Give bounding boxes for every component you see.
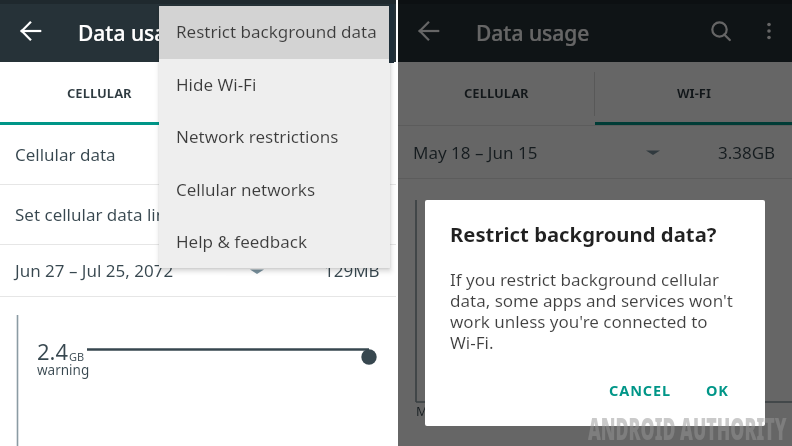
staticText: CELLULAR [464,84,529,102]
staticText: GB [69,349,85,364]
button[interactable]: Jun 27 – Jul 25, 2072 [0,245,396,296]
button[interactable]: Restrict background data [159,6,390,59]
staticText: Hide Wi-Fi [176,73,257,96]
staticText: Jun 27 – Jul 25, 2072 [15,259,174,282]
staticText: 3.38GB [718,141,776,164]
staticText: OK [706,380,729,400]
button[interactable]: WI-FI [198,62,396,125]
button[interactable]: Help & feedback [159,216,390,268]
staticText: Data usage [78,19,192,48]
staticText: Restrict background data? [450,220,717,248]
button[interactable]: Back [412,14,446,48]
staticText: M [416,402,428,420]
button[interactable]: Search [700,11,740,51]
button[interactable]: Hide Wi-Fi [159,59,390,111]
button[interactable]: CELLULAR [398,62,595,125]
staticText: Cellular data [15,143,116,166]
button[interactable]: May 18 – Jun 15 [398,126,792,178]
staticText: Data usage [476,19,590,48]
button[interactable]: Back [14,14,48,48]
staticText: If you restrict background cellular data… [450,268,733,354]
button[interactable]: Cellular networks [159,164,390,216]
button[interactable]: CANCEL [597,374,684,406]
staticText: WI-FI [677,84,711,102]
button[interactable]: More options [753,15,785,47]
staticText: Help & feedback [176,230,308,253]
button[interactable]: WI-FI [595,62,792,125]
button[interactable]: OK [694,374,741,406]
staticText: Cellular networks [176,178,316,201]
staticText: 129MB [324,259,380,282]
staticText: CELLULAR [67,84,132,102]
staticText: ANDROID AUTHORITY [588,408,787,446]
button[interactable]: CELLULAR [0,62,198,125]
staticText: Network restrictions [176,125,339,148]
button[interactable]: Cellular data [0,125,396,184]
button[interactable]: Set cellular data limit [0,185,396,244]
staticText: May 18 – Jun 15 [413,141,538,164]
button[interactable]: Network restrictions [159,111,390,164]
staticText: 2.4 [37,336,69,366]
staticText: warning [37,361,90,379]
staticText: CANCEL [609,380,672,400]
staticText: Restrict background data [176,20,377,43]
staticText: Set cellular data limit [15,203,183,226]
